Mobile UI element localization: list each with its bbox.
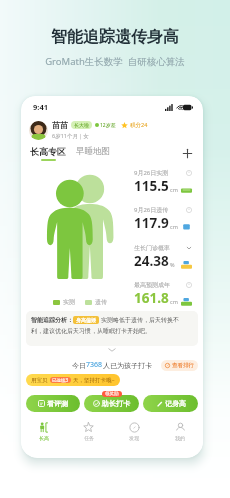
- staticText: 9:41: [33, 102, 48, 112]
- staticText: 6岁11个月｜女: [52, 132, 89, 140]
- button[interactable]: 长高: [21, 419, 66, 449]
- button[interactable]: 记身高: [143, 395, 198, 412]
- staticText: 161.8: [134, 289, 169, 307]
- button[interactable]: 长高专区: [30, 146, 66, 161]
- staticText: 遗传: [95, 298, 107, 306]
- staticText: 查看排行: [172, 362, 194, 369]
- staticText: 7368: [86, 360, 103, 370]
- staticText: 早睡地图: [76, 146, 110, 157]
- button[interactable]: 早睡地图: [76, 146, 110, 160]
- staticText: %: [170, 261, 175, 268]
- staticText: GroMath生长数学 自研核心算法: [0, 55, 230, 68]
- staticText: 记身高: [165, 399, 186, 408]
- staticText: cm: [170, 186, 178, 193]
- staticText: 智能追踪遗传身高: [0, 27, 230, 47]
- staticText: cm: [170, 223, 178, 230]
- staticText: 12岁差: [100, 122, 116, 129]
- staticText: 智能追踪分析：: [31, 316, 73, 324]
- button[interactable]: Add: [181, 147, 194, 160]
- staticText: 身高偏矮: [76, 317, 96, 323]
- button[interactable]: 发现: [111, 419, 157, 449]
- staticText: 苗苗: [52, 120, 68, 130]
- staticText: 生长门诊概率: [134, 244, 170, 252]
- staticText: 实测略低于遗传，后天转换不: [101, 316, 179, 324]
- staticText: 天，坚持打卡哦~: [73, 376, 115, 384]
- button[interactable]: 助长打卡: [84, 395, 139, 412]
- staticText: cm: [170, 298, 178, 305]
- button[interactable]: 我的: [157, 419, 203, 449]
- button[interactable]: Profile photo: [29, 121, 48, 140]
- staticText: 9月26日遗传: [134, 206, 169, 214]
- staticText: 最高预测成年: [134, 281, 170, 289]
- staticText: 我的: [175, 435, 185, 441]
- button[interactable]: 智能追踪分析：: [26, 311, 198, 346]
- button[interactable]: 看评测: [26, 395, 80, 412]
- button[interactable]: 任务: [66, 419, 111, 449]
- staticText: 长高: [39, 435, 49, 441]
- staticText: 人已为孩子打卡: [103, 361, 152, 370]
- staticText: 看评测: [47, 399, 68, 408]
- staticText: 115.5: [134, 177, 169, 195]
- button[interactable]: 用宝贝: [26, 374, 120, 386]
- staticText: 任务: [84, 435, 94, 441]
- staticText: 用宝贝: [31, 377, 48, 384]
- staticText: 实测: [63, 298, 75, 306]
- staticText: 24.38: [134, 252, 169, 270]
- staticText: 今日: [72, 361, 86, 370]
- staticText: 利，建议优化后天习惯，从睡眠打卡开始吧。: [31, 327, 151, 335]
- staticText: 助长打卡: [102, 399, 130, 408]
- staticText: 已连续3: [52, 377, 69, 383]
- staticText: 积分24: [130, 121, 148, 129]
- staticText: 长高专区: [30, 146, 66, 157]
- staticText: 发现: [129, 435, 139, 441]
- button[interactable]: 查看排行: [161, 360, 198, 371]
- staticText: 117.9: [134, 214, 169, 232]
- staticText: 9月26日实测: [134, 169, 169, 177]
- staticText: 长大啦: [74, 122, 89, 128]
- staticText: 领奖励: [105, 391, 119, 397]
